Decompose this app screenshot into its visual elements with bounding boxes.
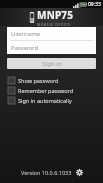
staticText: MNP75 xyxy=(37,8,74,22)
button[interactable]: Settings xyxy=(75,168,83,176)
staticText: 09:33 xyxy=(88,1,101,8)
button[interactable]: Sign in xyxy=(7,58,96,69)
staticText: Sign in automatically xyxy=(18,97,72,104)
button[interactable]: Sign in automatically xyxy=(0,95,103,105)
button[interactable]: Username xyxy=(7,27,96,40)
staticText: Sign in xyxy=(42,60,62,68)
staticText: MOBILE OFFICE xyxy=(37,22,71,26)
staticText: Password xyxy=(11,44,39,52)
button[interactable]: Password xyxy=(7,41,96,54)
staticText: Show password xyxy=(18,77,59,84)
staticText: Remember password xyxy=(18,87,74,94)
staticText: Version 10.0.6.1033 xyxy=(21,169,72,176)
button[interactable]: Remember password xyxy=(0,85,103,95)
staticText: Username xyxy=(11,30,41,38)
button[interactable]: Show password xyxy=(0,75,103,85)
